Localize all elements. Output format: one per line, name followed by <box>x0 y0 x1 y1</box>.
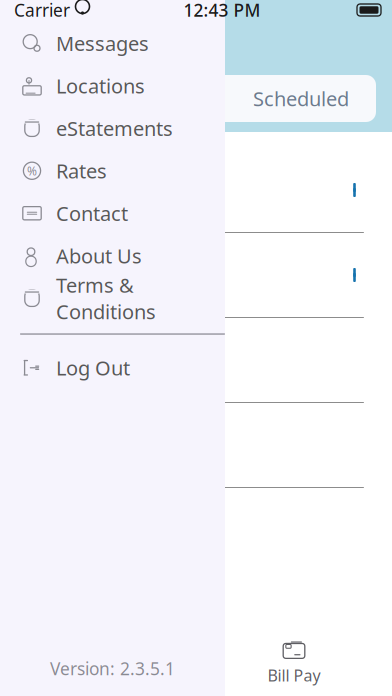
staticText: Carrier <box>14 0 70 21</box>
button[interactable] <box>14 233 378 317</box>
button[interactable]: Locations <box>0 64 225 107</box>
button[interactable]: Bill Pay <box>196 629 392 696</box>
button[interactable]: Log Out <box>0 346 225 389</box>
staticText: Version: 2.3.5.1 <box>50 657 175 680</box>
button[interactable]: Terms & Conditions <box>0 277 225 319</box>
button[interactable]: eStatements <box>0 107 225 149</box>
button[interactable] <box>14 148 378 232</box>
staticText: eStatements <box>56 115 173 142</box>
button[interactable]: Scheduled <box>226 75 376 122</box>
button[interactable] <box>14 403 378 487</box>
staticText: Terms & Conditions <box>56 272 156 325</box>
staticText: About Us <box>56 242 142 269</box>
button[interactable]: Contact <box>0 192 225 234</box>
staticText: Contact <box>56 200 128 227</box>
staticText: Scheduled <box>253 85 349 112</box>
staticText: Messages <box>56 30 149 57</box>
button[interactable]: Messages <box>0 629 196 696</box>
button[interactable]: % <box>0 149 225 192</box>
button[interactable]: About Us <box>0 234 225 277</box>
staticText: % <box>27 163 37 179</box>
staticText: Messages <box>60 665 136 686</box>
staticText: Log Out <box>56 354 130 381</box>
staticText: Rates <box>56 157 107 184</box>
staticText: Bill Pay <box>267 665 320 686</box>
staticText: 12:43 PM <box>183 0 260 21</box>
button[interactable] <box>14 318 378 402</box>
staticText: Locations <box>56 72 145 99</box>
button[interactable]: Messages <box>0 22 225 64</box>
